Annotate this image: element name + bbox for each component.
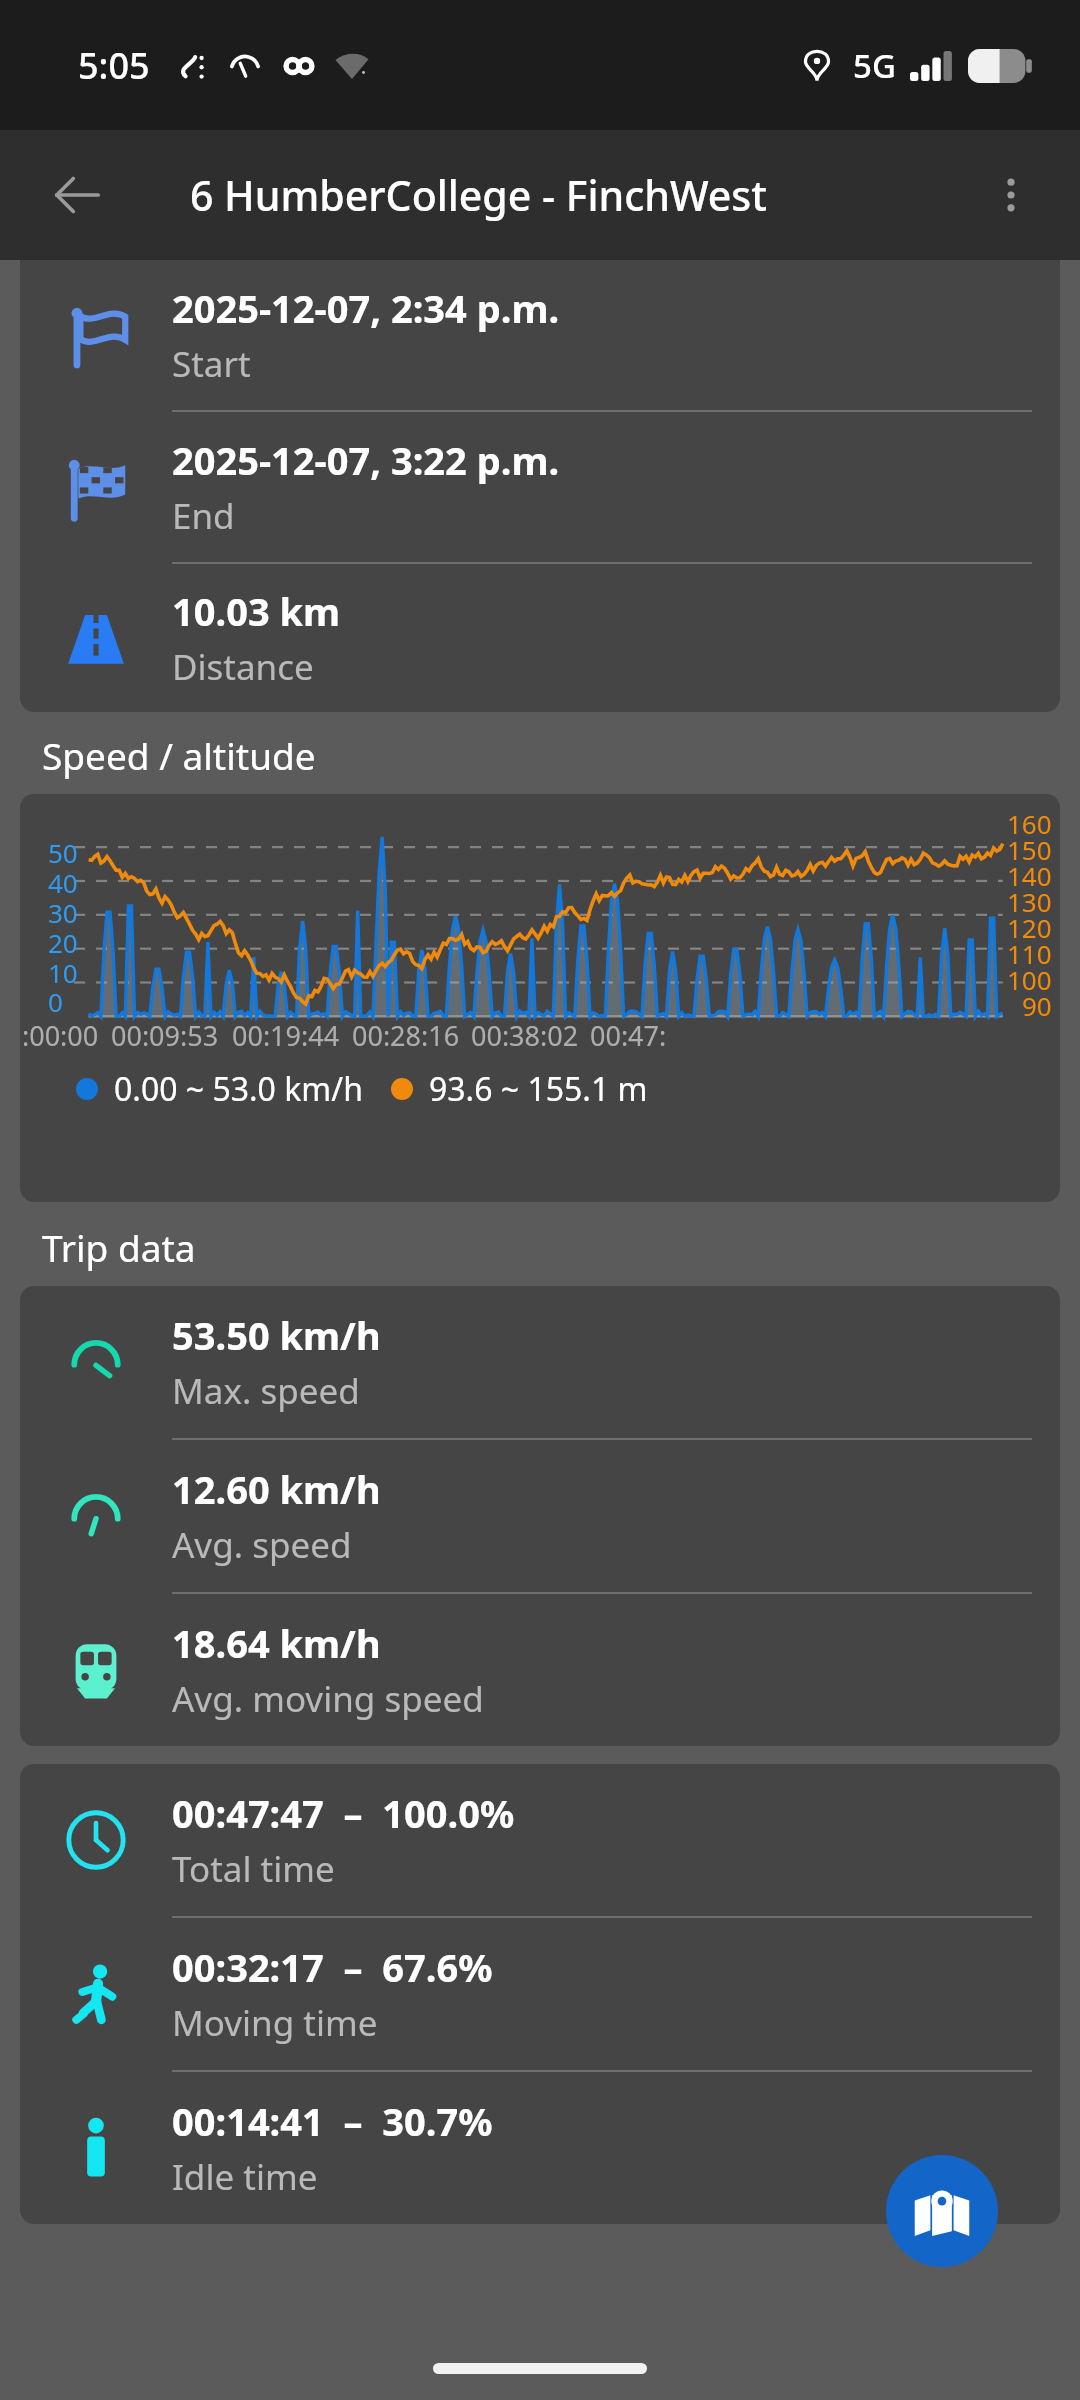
button[interactable]: 18.64 km/h (20, 1594, 1060, 1746)
staticText: 2025-12-07, 2:34 p.m. (172, 282, 560, 334)
button[interactable]: 2025-12-07, 3:22 p.m. (20, 412, 1060, 562)
staticText: Trip data (42, 1222, 196, 1272)
button[interactable]: 00:32:17 – 67.6% (20, 1918, 1060, 2070)
staticText: :00:00 (22, 1017, 99, 1054)
staticText: Total time (172, 1845, 335, 1893)
staticText: 50 (48, 835, 78, 870)
staticText: 00:38:02 (471, 1017, 579, 1054)
staticText: 20 (48, 925, 78, 960)
button[interactable]: 12.60 km/h (20, 1440, 1060, 1592)
staticText: 00:47:47 – 100.0% (172, 1787, 515, 1839)
staticText: 5G (853, 43, 896, 88)
staticText: 40 (48, 865, 78, 900)
button[interactable]: 00:47:47 – 100.0% (20, 1764, 1060, 1916)
staticText: 10.03 km (172, 585, 341, 637)
staticText: 12.60 km/h (172, 1463, 381, 1515)
staticText: 130 (1007, 884, 1052, 919)
button[interactable]: Show on map (886, 2155, 998, 2267)
staticText: 00:47: (590, 1017, 667, 1054)
staticText: 00:14:41 – 30.7% (172, 2095, 493, 2147)
staticText: 00:32:17 – 67.6% (172, 1941, 493, 1993)
staticText: 0.00 ~ 53.0 km/h (114, 1067, 363, 1111)
staticText: Start (172, 340, 251, 388)
staticText: 150 (1007, 832, 1052, 867)
staticText: 18.64 km/h (172, 1617, 381, 1669)
staticText: Idle time (172, 2153, 318, 2201)
staticText: Distance (172, 643, 314, 691)
staticText: Speed / altitude (42, 730, 316, 780)
staticText: 53.50 km/h (172, 1309, 381, 1361)
staticText: 5:05 (78, 41, 150, 90)
staticText: 90 (1022, 988, 1052, 1023)
staticText: 93.6 ~ 155.1 m (429, 1067, 648, 1111)
staticText: 110 (1007, 936, 1052, 971)
staticText: 0 (48, 984, 63, 1019)
staticText: 2025-12-07, 3:22 p.m. (172, 434, 560, 486)
button[interactable]: 2025-12-07, 2:34 p.m. (20, 260, 1060, 410)
button[interactable]: Back (38, 156, 116, 234)
staticText: Moving time (172, 1999, 378, 2047)
staticText: 100 (1007, 962, 1052, 997)
staticText: 00:28:16 (352, 1017, 460, 1054)
button[interactable]: 10.03 km (20, 564, 1060, 712)
staticText: Avg. speed (172, 1521, 352, 1569)
staticText: 10 (48, 955, 78, 990)
staticText: 00:09:53 (111, 1017, 219, 1054)
staticText: 30 (48, 895, 78, 930)
staticText: 160 (1007, 806, 1052, 841)
staticText: Avg. moving speed (172, 1675, 484, 1723)
staticText: 120 (1007, 910, 1052, 945)
button[interactable]: More options (972, 156, 1050, 234)
staticText: 6 HumberCollege - FinchWest (190, 167, 767, 223)
staticText: 00:19:44 (232, 1017, 340, 1054)
staticText: End (172, 492, 235, 540)
button[interactable]: 53.50 km/h (20, 1286, 1060, 1438)
button[interactable]: 00:14:41 – 30.7% (20, 2072, 1060, 2224)
staticText: 140 (1007, 858, 1052, 893)
staticText: Max. speed (172, 1367, 360, 1415)
